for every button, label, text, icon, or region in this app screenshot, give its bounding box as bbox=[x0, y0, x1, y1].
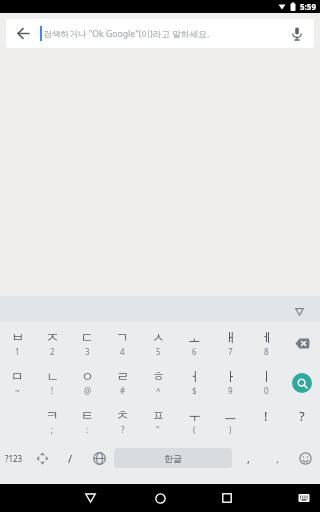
staticText: ㅋ bbox=[46, 407, 59, 423]
staticText: ? bbox=[121, 424, 125, 435]
button[interactable]: ! bbox=[248, 402, 284, 441]
button[interactable]: ? bbox=[284, 402, 320, 441]
button[interactable]: ㅊ bbox=[105, 402, 140, 441]
staticText: ㅔ bbox=[260, 329, 273, 345]
staticText: ! bbox=[51, 385, 54, 396]
staticText: ㄱ bbox=[116, 329, 129, 345]
staticText: ? bbox=[299, 407, 305, 425]
button[interactable]: ㄷ bbox=[70, 324, 105, 363]
staticText: , bbox=[247, 451, 250, 466]
staticText: 5:59 bbox=[300, 1, 316, 12]
button[interactable]: ㅂ bbox=[0, 324, 35, 363]
staticText: 8 bbox=[264, 346, 269, 357]
button[interactable]: ㅜ bbox=[176, 402, 212, 441]
button[interactable]: ㅏ bbox=[212, 363, 248, 402]
staticText: 9 bbox=[228, 385, 233, 396]
button[interactable]: 한글 bbox=[114, 448, 232, 468]
button[interactable]: ㅁ bbox=[0, 363, 35, 402]
button[interactable]: ?123 bbox=[0, 441, 28, 475]
staticText: 한글 bbox=[164, 453, 182, 464]
button[interactable] bbox=[62, 484, 118, 512]
button[interactable] bbox=[284, 324, 320, 363]
staticText: ㅜ bbox=[188, 407, 201, 423]
staticText: 3 bbox=[85, 346, 90, 357]
staticText: ㅏ bbox=[224, 368, 237, 384]
staticText: " bbox=[156, 424, 160, 435]
staticText: ㅗ bbox=[188, 329, 201, 345]
button[interactable]: ㄱ bbox=[105, 324, 140, 363]
staticText: ! bbox=[264, 407, 268, 425]
staticText: 1 bbox=[15, 346, 20, 357]
staticText: ^ bbox=[156, 385, 161, 396]
staticText: ㅅ bbox=[152, 329, 165, 345]
button[interactable]: ㅎ bbox=[140, 363, 176, 402]
staticText: @ bbox=[84, 385, 92, 396]
staticText: ㄹ bbox=[116, 368, 129, 384]
staticText: ㅁ bbox=[11, 368, 24, 384]
button[interactable] bbox=[6, 19, 40, 48]
staticText: 4 bbox=[120, 346, 125, 357]
button[interactable] bbox=[199, 484, 255, 512]
button[interactable]: ㅍ bbox=[140, 402, 176, 441]
staticText: $ bbox=[192, 385, 197, 396]
button[interactable]: ㅇ bbox=[70, 363, 105, 402]
staticText: ㅎ bbox=[152, 368, 165, 384]
button[interactable] bbox=[292, 305, 306, 319]
button[interactable]: ㅋ bbox=[35, 402, 70, 441]
button[interactable] bbox=[28, 441, 56, 475]
staticText: ㅈ bbox=[46, 329, 59, 345]
staticText: 7 bbox=[228, 346, 233, 357]
staticText: 검색하거나 "Ok Google"(이)라고 말하세요. bbox=[43, 28, 210, 40]
button[interactable]: 검색하거나 "Ok Google"(이)라고 말하세요. bbox=[6, 19, 314, 48]
staticText: ㅇ bbox=[81, 368, 94, 384]
button[interactable]: ㅌ bbox=[70, 402, 105, 441]
button[interactable] bbox=[290, 441, 320, 475]
button[interactable]: ㅗ bbox=[176, 324, 212, 363]
button[interactable]: ㅔ bbox=[248, 324, 284, 363]
button[interactable]: . bbox=[264, 441, 290, 475]
button[interactable]: ㅅ bbox=[140, 324, 176, 363]
staticText: 2 bbox=[50, 346, 55, 357]
button[interactable]: ㄹ bbox=[105, 363, 140, 402]
staticText: ㅍ bbox=[152, 407, 165, 423]
staticText: ㄷ bbox=[81, 329, 94, 345]
staticText: ㅊ bbox=[116, 407, 129, 423]
staticText: ㅡ bbox=[224, 407, 237, 423]
button[interactable] bbox=[84, 441, 114, 475]
staticText: ㅣ bbox=[260, 368, 273, 384]
staticText: ㅌ bbox=[81, 407, 94, 423]
staticText: / bbox=[68, 451, 73, 466]
staticText: # bbox=[120, 385, 126, 396]
staticText: ) bbox=[229, 424, 232, 435]
staticText: ㄴ bbox=[46, 368, 59, 384]
button[interactable]: ㅣ bbox=[248, 363, 284, 402]
button[interactable]: ㅡ bbox=[212, 402, 248, 441]
staticText: ?123 bbox=[5, 453, 23, 464]
staticText: 0 bbox=[264, 385, 269, 396]
staticText: : bbox=[86, 424, 89, 435]
staticText: 5 bbox=[156, 346, 161, 357]
staticText: ~ bbox=[15, 385, 20, 396]
button[interactable]: ㄴ bbox=[35, 363, 70, 402]
button[interactable]: / bbox=[56, 441, 84, 475]
staticText: 6 bbox=[192, 346, 197, 357]
button[interactable]: ㅓ bbox=[176, 363, 212, 402]
staticText: ㅂ bbox=[11, 329, 24, 345]
button[interactable] bbox=[284, 363, 320, 402]
button[interactable]: ㅐ bbox=[212, 324, 248, 363]
staticText: ; bbox=[51, 424, 54, 435]
button[interactable]: ㅈ bbox=[35, 324, 70, 363]
button[interactable] bbox=[288, 484, 320, 512]
staticText: . bbox=[276, 451, 279, 466]
button[interactable] bbox=[280, 19, 314, 48]
staticText: ( bbox=[193, 424, 196, 435]
staticText: ㅓ bbox=[188, 368, 201, 384]
staticText: ㅐ bbox=[224, 329, 237, 345]
button[interactable]: , bbox=[232, 441, 264, 475]
button[interactable] bbox=[132, 484, 188, 512]
